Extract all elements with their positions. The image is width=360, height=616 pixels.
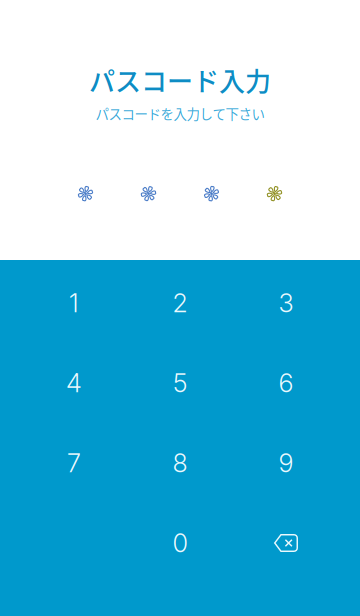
- staticText: 3: [278, 288, 293, 318]
- staticText: 9: [278, 448, 293, 478]
- button[interactable]: [233, 503, 339, 583]
- button[interactable]: 8: [127, 423, 233, 503]
- staticText: 7: [67, 448, 81, 478]
- button[interactable]: 9: [233, 423, 339, 503]
- staticText: 0: [172, 528, 187, 558]
- button[interactable]: 6: [233, 343, 339, 423]
- button[interactable]: 5: [127, 343, 233, 423]
- staticText: 1: [69, 288, 79, 318]
- button[interactable]: 4: [21, 343, 127, 423]
- button[interactable]: 1: [21, 263, 127, 343]
- staticText: 2: [172, 288, 187, 318]
- staticText: パスコードを入力して下さい: [95, 104, 264, 123]
- button[interactable]: 3: [233, 263, 339, 343]
- staticText: 5: [173, 368, 187, 398]
- staticText: 8: [172, 448, 187, 478]
- button[interactable]: 2: [127, 263, 233, 343]
- button[interactable]: 7: [21, 423, 127, 503]
- staticText: パスコード入力: [89, 61, 271, 99]
- staticText: 4: [66, 368, 82, 398]
- staticText: 6: [278, 368, 293, 398]
- button[interactable]: 0: [127, 503, 233, 583]
